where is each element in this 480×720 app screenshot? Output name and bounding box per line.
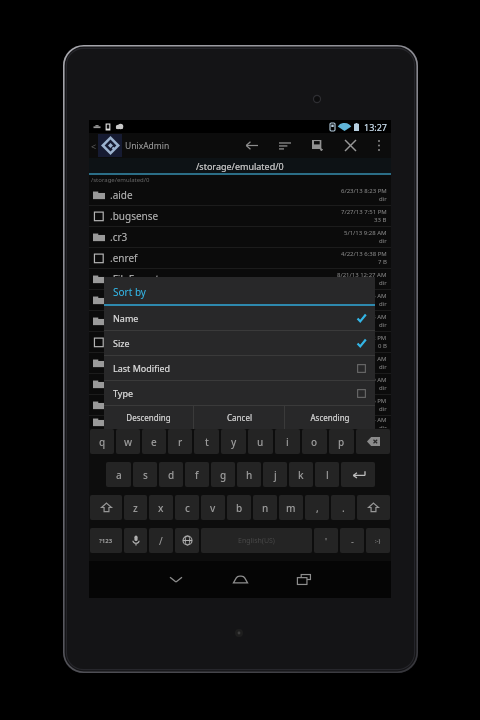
staticText: 4/22/13 6:38 PM (341, 250, 387, 258)
button[interactable]: f (185, 462, 209, 487)
button[interactable]: w (116, 429, 140, 454)
button[interactable]: App icon (98, 134, 122, 157)
button[interactable]: l (315, 462, 339, 487)
staticText: d (168, 468, 175, 482)
button[interactable]: Cancel (194, 406, 284, 429)
button[interactable]: t (194, 429, 219, 454)
button[interactable]: Hide keyboard (144, 561, 208, 598)
staticText: b (236, 501, 243, 515)
button[interactable]: s (133, 462, 157, 487)
button[interactable] (90, 495, 122, 520)
staticText: .cr3 (110, 230, 128, 244)
button[interactable]: Home (208, 561, 272, 598)
staticText: k (298, 468, 304, 482)
button[interactable]: u (248, 429, 273, 454)
button[interactable]: c (175, 495, 199, 520)
button[interactable]: .FileExpert (89, 269, 391, 289)
button[interactable]: Recents (272, 561, 336, 598)
button[interactable]: Size (104, 331, 375, 355)
button[interactable] (341, 462, 375, 487)
staticText: a (116, 468, 122, 482)
staticText: dir (379, 424, 387, 428)
button[interactable]: .goodreader (89, 290, 391, 310)
button[interactable]: v (201, 495, 225, 520)
button[interactable]: .bugsense (89, 206, 391, 226)
button[interactable]: k (289, 462, 313, 487)
button[interactable]: - (340, 528, 364, 553)
button[interactable]: m (279, 495, 303, 520)
button[interactable]: Type (104, 381, 375, 405)
staticText: 8/21/13 12:27 AM (337, 271, 387, 279)
button[interactable]: e (142, 429, 166, 454)
staticText: 7/27/13 7:51 PM (341, 208, 387, 216)
button[interactable]: .android (89, 416, 391, 428)
button[interactable]: , (305, 495, 329, 520)
button[interactable]: Last Modified (104, 356, 375, 380)
button[interactable]: Close (334, 133, 367, 158)
button[interactable]: Back (235, 133, 268, 158)
button[interactable]: j (263, 462, 287, 487)
staticText: g (220, 468, 227, 482)
staticText: Cancel (227, 412, 252, 423)
button[interactable]: English(US) (201, 528, 312, 553)
staticText: dir (379, 384, 387, 392)
staticText: English(US) (238, 536, 275, 546)
button[interactable]: Name (104, 306, 375, 330)
button[interactable]: .enref (89, 248, 391, 268)
button[interactable] (175, 528, 199, 553)
button[interactable]: b (227, 495, 251, 520)
button[interactable] (356, 429, 390, 454)
button[interactable]: z (124, 495, 147, 520)
button[interactable]: ?123 (90, 528, 122, 553)
staticText: t (205, 435, 209, 449)
button[interactable]: Descending (104, 406, 193, 429)
staticText: dir (379, 195, 387, 203)
button[interactable]: . (331, 495, 355, 520)
button[interactable]: .mixzing (89, 311, 391, 331)
button[interactable]: p (329, 429, 354, 454)
button[interactable]: .tmp (89, 374, 391, 394)
staticText: q (99, 435, 106, 449)
button[interactable]: .estrongs (89, 395, 391, 415)
button[interactable]: .thumbnails (89, 353, 391, 373)
button[interactable]: Sort (268, 133, 301, 158)
staticText: 3/3/13 3:33 AM (344, 313, 387, 321)
staticText: Ascending (310, 412, 350, 423)
button[interactable]: Ascending (285, 406, 375, 429)
button[interactable]: x (149, 495, 173, 520)
button[interactable]: ' (314, 528, 338, 553)
button[interactable]: n (253, 495, 277, 520)
button[interactable]: .nomedia (89, 332, 391, 352)
button[interactable]: / (149, 528, 173, 553)
button[interactable] (124, 528, 147, 553)
button[interactable]: g (211, 462, 235, 487)
button[interactable]: :-) (366, 528, 390, 553)
button[interactable]: o (302, 429, 327, 454)
button[interactable]: r (168, 429, 192, 454)
staticText: f (195, 468, 199, 482)
staticText: .aide (110, 188, 133, 202)
staticText: w (124, 435, 133, 449)
button[interactable]: i (275, 429, 300, 454)
staticText: .android (110, 416, 150, 428)
button[interactable] (357, 495, 390, 520)
staticText: dir (379, 237, 387, 245)
staticText: z (133, 501, 138, 515)
staticText: dir (379, 363, 387, 371)
staticText: .mixzing (110, 314, 150, 328)
staticText: Last Modified (113, 362, 171, 374)
button[interactable]: .aide (89, 185, 391, 205)
button[interactable]: a (106, 462, 131, 487)
button[interactable]: q (90, 429, 114, 454)
button[interactable]: y (221, 429, 246, 454)
staticText: o (311, 435, 318, 449)
button[interactable]: Save (301, 133, 334, 158)
staticText: 13:27 (364, 121, 388, 133)
button[interactable]: More options (367, 133, 391, 158)
staticText: Sort by (113, 285, 146, 299)
button[interactable]: d (159, 462, 183, 487)
button[interactable]: .cr3 (89, 227, 391, 247)
button[interactable]: /storage/emulated/0 (89, 158, 391, 173)
staticText: < (91, 140, 97, 152)
button[interactable]: h (237, 462, 261, 487)
